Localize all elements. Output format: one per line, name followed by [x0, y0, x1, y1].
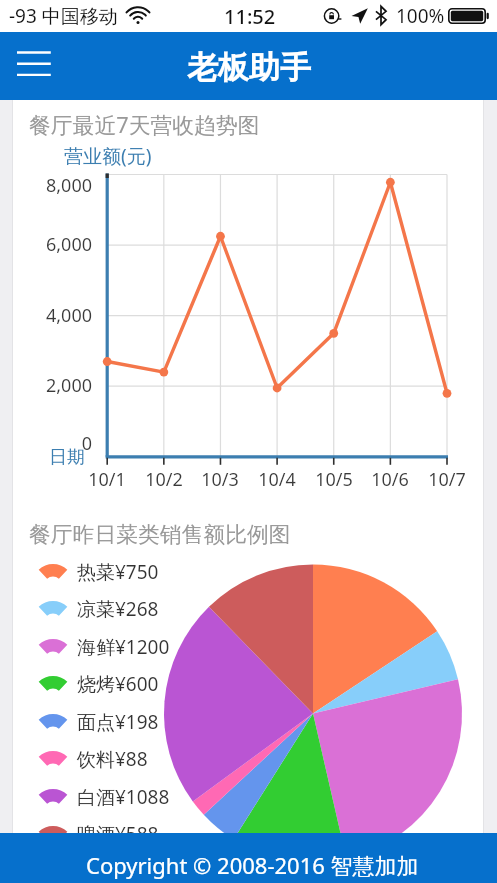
staticText: 10/6: [360, 467, 420, 492]
staticText: 餐厅昨日菜类销售额比例图: [29, 521, 291, 548]
staticText: 热菜¥750: [77, 559, 159, 585]
staticText: 11:52: [224, 3, 276, 30]
button[interactable]: 面点¥198: [38, 704, 198, 740]
button[interactable]: 饮料¥88: [38, 741, 198, 777]
button[interactable]: 白酒¥1088: [38, 779, 198, 815]
staticText: 8,000: [32, 173, 92, 198]
staticText: -93 中国移动: [9, 3, 118, 29]
staticText: 4,000: [32, 303, 92, 328]
staticText: 面点¥198: [77, 709, 159, 735]
staticText: 0: [32, 431, 92, 456]
button[interactable]: 啤酒¥588: [38, 816, 198, 852]
button[interactable]: Open navigation menu: [5, 42, 63, 90]
staticText: 6,000: [32, 232, 92, 257]
staticText: 海鲜¥1200: [77, 634, 170, 660]
staticText: 老板助手: [187, 48, 311, 87]
button[interactable]: 凉菜¥268: [38, 591, 198, 627]
staticText: Copyright © 2008-2016 智慧加加: [86, 850, 419, 880]
staticText: 啤酒¥588: [77, 821, 159, 847]
staticText: 营业额(元): [64, 143, 152, 169]
staticText: 饮料¥88: [77, 746, 148, 772]
staticText: 10/5: [304, 467, 364, 492]
staticText: 凉菜¥268: [77, 596, 159, 622]
staticText: 10/1: [77, 467, 137, 492]
staticText: 白酒¥1088: [77, 784, 170, 810]
staticText: 100%: [396, 3, 445, 29]
staticText: 餐厅最近7天营收趋势图: [29, 110, 260, 140]
staticText: 烧烤¥600: [77, 671, 159, 697]
staticText: 2,000: [32, 373, 92, 398]
staticText: 日期: [49, 446, 85, 469]
button[interactable]: 热菜¥750: [38, 554, 198, 590]
staticText: 10/4: [247, 467, 307, 492]
staticText: 10/2: [134, 467, 194, 492]
button[interactable]: 烧烤¥600: [38, 666, 198, 702]
button[interactable]: Copyright © 2008-2016 智慧加加: [0, 833, 497, 883]
staticText: 10/7: [417, 467, 477, 492]
staticText: 10/3: [190, 467, 250, 492]
button[interactable]: 海鲜¥1200: [38, 629, 198, 665]
